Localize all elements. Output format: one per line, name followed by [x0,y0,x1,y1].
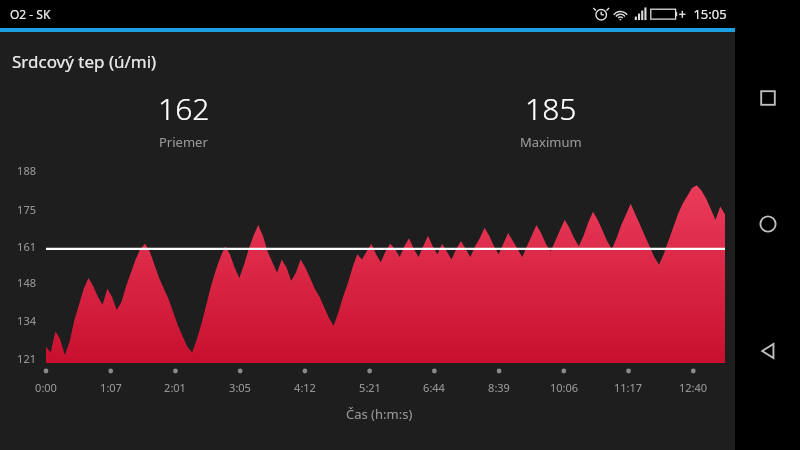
button[interactable]: Back [740,323,796,379]
staticText: 3:05 [216,380,264,395]
staticText: 148 [0,275,36,290]
staticText: 4:12 [281,380,329,395]
staticText: 6:44 [410,380,458,395]
staticText: 0:00 [22,380,70,395]
staticText: Priemer [159,133,208,151]
staticText: 1:07 [87,380,135,395]
button[interactable]: Recent apps [740,70,796,126]
button[interactable]: Home [740,196,796,252]
staticText: 134 [0,313,36,328]
staticText: Čas (h:m:s) [346,405,413,423]
staticText: 121 [0,351,36,366]
staticText: Maximum [520,133,582,151]
staticText: 161 [0,239,36,254]
staticText: 8:39 [475,380,523,395]
staticText: 12:40 [669,380,717,395]
staticText: 5:21 [346,380,394,395]
staticText: 11:17 [604,380,652,395]
staticText: 2:01 [151,380,199,395]
staticText: 185 [525,88,577,129]
staticText: O2 - SK [10,6,51,22]
staticText: 162 [158,88,210,129]
staticText: 15:05 [690,5,727,23]
staticText: 175 [0,202,36,217]
staticText: Srdcový tep (ú/mi) [12,50,157,73]
staticText: 10:06 [540,380,588,395]
staticText: 188 [0,163,36,178]
